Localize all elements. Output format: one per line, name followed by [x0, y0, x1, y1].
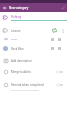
staticText: Leisure [11, 29, 21, 33]
button[interactable]: Add description [0, 56, 67, 65]
button[interactable]: Rock Blue [0, 44, 67, 53]
staticText: New category [9, 6, 29, 10]
button[interactable]: Remind when completed [0, 80, 67, 89]
staticText: Reminder will be created [11, 88, 39, 91]
staticText: Merge bubbles [11, 70, 31, 74]
staticText: Sport [11, 37, 18, 40]
button[interactable]: Merge bubbles [0, 67, 67, 76]
staticText: Rock Blue [11, 47, 24, 51]
button[interactable]: Repeat [50, 26, 59, 35]
staticText: Add description [11, 59, 32, 63]
button[interactable]: Fishing [0, 12, 67, 22]
staticText: Remind when completed [11, 83, 44, 87]
button[interactable]: Leisure [0, 26, 67, 35]
staticText: Fishing [11, 15, 22, 19]
button[interactable]: Done [58, 3, 67, 12]
button[interactable]: More options [59, 27, 67, 35]
button[interactable]: Back [0, 3, 9, 12]
